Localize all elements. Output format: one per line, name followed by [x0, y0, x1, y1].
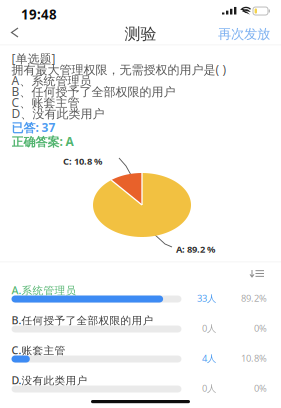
staticText: 19:48	[21, 5, 57, 23]
button[interactable]: C.账套主管	[0, 343, 281, 373]
button[interactable]: 再次发放	[217, 23, 271, 45]
staticText: 0%	[254, 322, 267, 334]
staticText: B、任何授予了全部权限的用户	[11, 83, 175, 99]
staticText: B.任何授予了全部权限的用户	[11, 313, 153, 327]
staticText: 测验	[124, 24, 156, 44]
staticText: D、没有此类用户	[11, 105, 104, 121]
staticText: C: 10.8 %	[63, 155, 102, 167]
staticText: 0人	[202, 322, 216, 334]
staticText: 拥有最大管理权限，无需授权的用户是( )	[11, 61, 226, 77]
staticText: A: 89.2 %	[176, 243, 215, 255]
button[interactable]: Sort	[244, 266, 270, 282]
staticText: 再次发放	[218, 26, 270, 42]
button[interactable]: A.系统管理员	[0, 283, 281, 313]
button[interactable]: Back	[0, 22, 30, 44]
button[interactable]: B.任何授予了全部权限的用户	[0, 313, 281, 343]
staticText: C、账套主管	[11, 94, 79, 110]
staticText: 10.8%	[241, 352, 267, 364]
button[interactable]: D.没有此类用户	[0, 373, 281, 403]
staticText: A.系统管理员	[11, 283, 76, 297]
staticText: A、系统管理员	[11, 72, 91, 88]
staticText: 4人	[202, 352, 216, 364]
staticText: 已答: 37	[11, 119, 55, 135]
staticText: C.账套主管	[11, 343, 65, 357]
staticText: [单选题]	[11, 50, 55, 66]
staticText: 33人	[197, 292, 216, 304]
staticText: D.没有此类用户	[11, 373, 87, 387]
staticText: 89.2%	[241, 292, 267, 304]
staticText: 正确答案: A	[11, 133, 73, 149]
staticText: 0%	[254, 382, 267, 394]
staticText: 0人	[202, 382, 216, 394]
